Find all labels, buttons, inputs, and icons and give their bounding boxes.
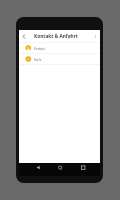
button[interactable]: Navigate up: [19, 30, 28, 43]
button[interactable]: Karte: [19, 54, 100, 65]
button[interactable]: Kontakt: [19, 43, 100, 54]
button[interactable]: Recent apps: [72, 163, 89, 176]
staticText: Karte: [34, 58, 42, 62]
staticText: Kontakt: [34, 47, 45, 51]
button[interactable]: More options: [90, 30, 100, 43]
button[interactable]: Back: [30, 163, 47, 176]
staticText: Kontakt & Anfahrt: [34, 33, 78, 40]
button[interactable]: Home: [51, 163, 68, 176]
